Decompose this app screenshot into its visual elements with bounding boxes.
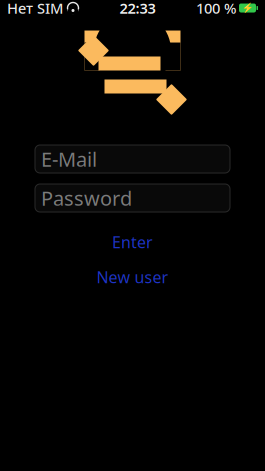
button[interactable]: E-Mail [35, 145, 230, 173]
staticText: New user [96, 266, 168, 288]
staticText: Password [41, 185, 132, 211]
staticText: Enter [112, 231, 153, 253]
staticText: 100 % [196, 0, 236, 18]
button[interactable]: Enter [0, 234, 265, 250]
staticText: 22:33 [119, 0, 155, 18]
staticText: E-Mail [41, 146, 97, 172]
button[interactable]: Password [35, 184, 230, 212]
button[interactable]: New user [0, 269, 265, 285]
staticText: ⚡ [241, 3, 253, 13]
staticText: Нет SIM [7, 0, 63, 18]
